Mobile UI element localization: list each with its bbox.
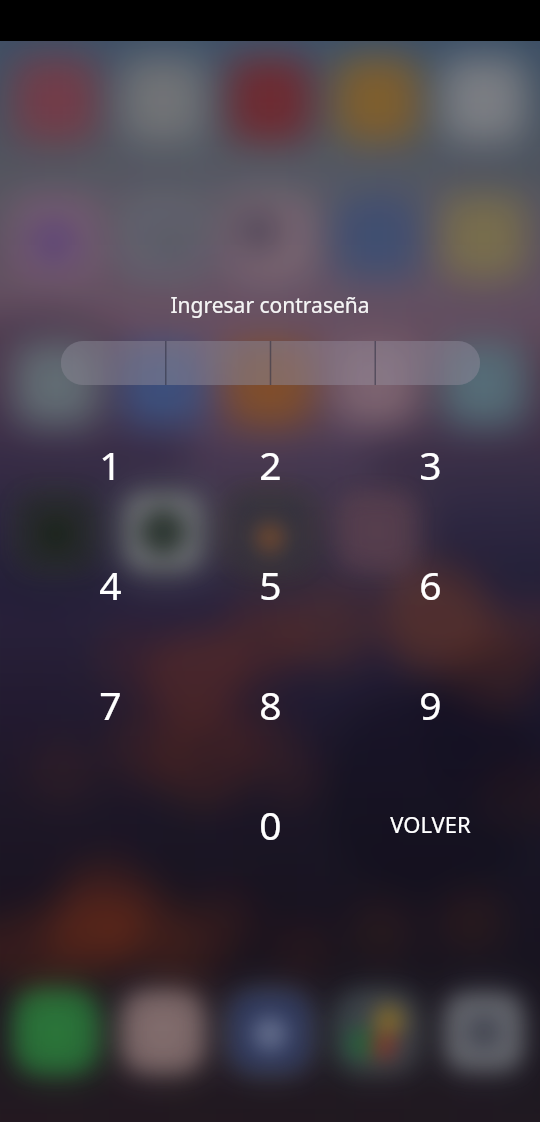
button[interactable]: 6: [360, 524, 540, 644]
staticText: 2: [259, 438, 282, 491]
staticText: 7: [99, 678, 122, 731]
button[interactable]: 2: [180, 404, 360, 524]
staticText: 4: [99, 558, 122, 611]
button[interactable]: [0, 764, 180, 884]
button[interactable]: 8: [180, 644, 360, 764]
staticText: 6: [419, 558, 442, 611]
staticText: VOLVER: [390, 809, 471, 839]
staticText: Ingresar contraseña: [0, 291, 540, 320]
staticText: 8: [259, 678, 282, 731]
button[interactable]: 0: [180, 764, 360, 884]
button[interactable]: 9: [360, 644, 540, 764]
button[interactable]: 3: [360, 404, 540, 524]
button[interactable]: 4: [0, 524, 180, 644]
staticText: 3: [419, 438, 442, 491]
button[interactable]: [61, 341, 480, 385]
button[interactable]: 1: [0, 404, 180, 524]
button[interactable]: 7: [0, 644, 180, 764]
staticText: 9: [419, 678, 442, 731]
button[interactable]: 5: [180, 524, 360, 644]
staticText: 0: [259, 798, 282, 851]
button[interactable]: VOLVER: [360, 764, 540, 884]
staticText: 1: [99, 438, 122, 491]
staticText: 5: [259, 558, 282, 611]
